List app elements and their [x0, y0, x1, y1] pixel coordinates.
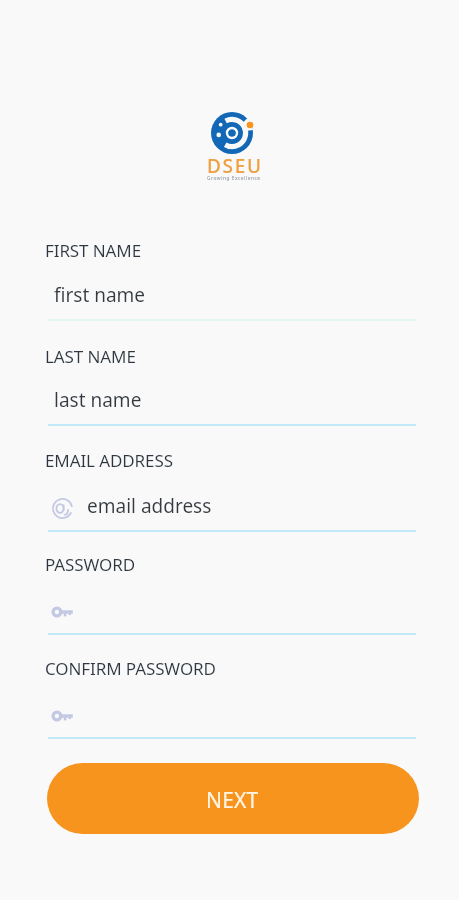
- staticText: first name: [54, 282, 146, 308]
- staticText: NEXT: [206, 786, 259, 815]
- staticText: EMAIL ADDRESS: [45, 449, 173, 472]
- staticText: last name: [54, 387, 142, 413]
- other: Password: [51, 705, 73, 727]
- other: DSEU logo: [209, 112, 255, 158]
- staticText: FIRST NAME: [45, 239, 142, 262]
- staticText: Growing Excellence: [207, 175, 261, 182]
- button[interactable]: NEXT: [47, 763, 419, 834]
- button[interactable]: [48, 653, 416, 740]
- button[interactable]: [48, 341, 416, 427]
- staticText: PASSWORD: [45, 553, 136, 576]
- staticText: CONFIRM PASSWORD: [45, 657, 216, 680]
- other: Password: [51, 601, 73, 623]
- button[interactable]: [48, 445, 416, 533]
- button[interactable]: [48, 549, 416, 636]
- staticText: DSEU: [207, 153, 263, 179]
- staticText: email address: [87, 493, 212, 519]
- staticText: LAST NAME: [45, 345, 136, 368]
- other: Email address: [52, 498, 73, 519]
- button[interactable]: [48, 235, 416, 322]
